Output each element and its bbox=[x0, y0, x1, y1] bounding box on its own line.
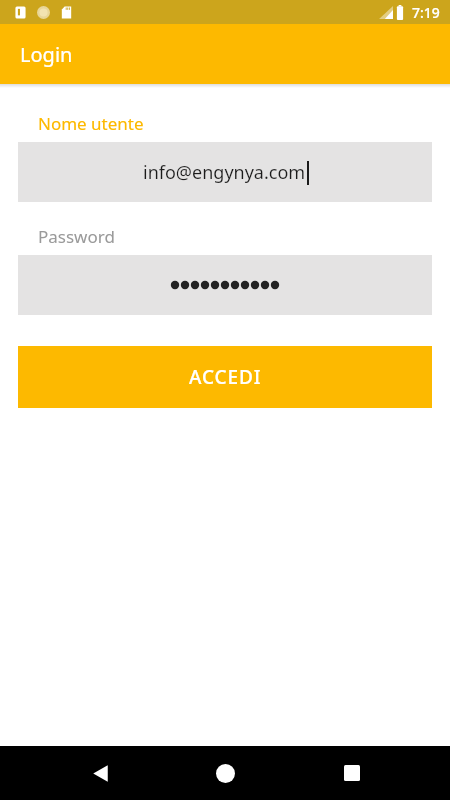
staticText: ACCEDI bbox=[189, 364, 262, 390]
staticText: Nome utente bbox=[38, 112, 144, 135]
staticText: Password bbox=[38, 225, 115, 248]
staticText: 7:19 bbox=[412, 3, 440, 22]
staticText: Login bbox=[20, 41, 73, 68]
button[interactable] bbox=[18, 255, 432, 315]
staticText: info@engynya.com bbox=[143, 160, 306, 185]
button[interactable]: ACCEDI bbox=[18, 346, 432, 408]
button[interactable]: Recent apps bbox=[330, 751, 374, 795]
button[interactable]: info@engynya.com bbox=[18, 142, 432, 202]
button[interactable]: Back bbox=[78, 751, 122, 795]
button[interactable]: Home bbox=[203, 751, 247, 795]
